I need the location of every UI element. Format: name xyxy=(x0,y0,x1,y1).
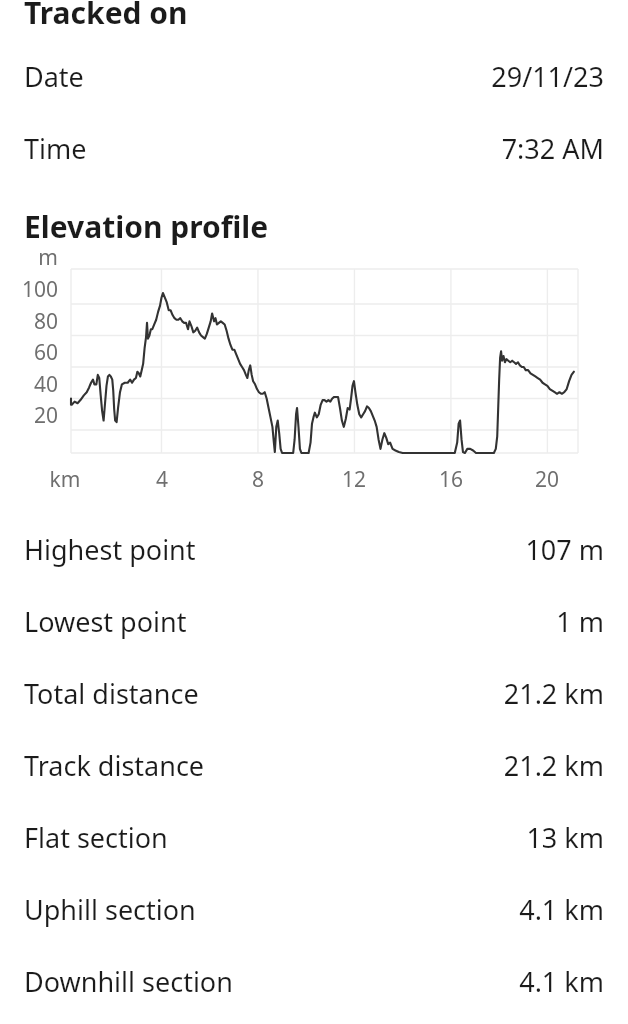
staticText: 4 xyxy=(127,465,197,494)
staticText: 16 xyxy=(416,465,486,494)
staticText: Total distance xyxy=(24,675,503,712)
staticText: 21.2 km xyxy=(503,747,604,784)
staticText: 8 xyxy=(223,465,293,494)
staticText: 4.1 km xyxy=(519,963,604,1000)
staticText: Date xyxy=(24,58,491,95)
button[interactable]: Date xyxy=(0,40,628,112)
staticText: 21.2 km xyxy=(503,675,604,712)
button[interactable]: Highest point xyxy=(0,513,628,585)
staticText: 4.1 km xyxy=(519,891,604,928)
staticText: 12 xyxy=(319,465,389,494)
staticText: 80 xyxy=(0,307,58,336)
staticText: 60 xyxy=(0,338,58,367)
staticText: Highest point xyxy=(24,531,525,568)
staticText: m xyxy=(0,243,58,272)
staticText: 1 m xyxy=(556,603,604,640)
button[interactable]: Time xyxy=(0,112,628,184)
button[interactable]: Flat section xyxy=(0,801,628,873)
staticText: Track distance xyxy=(24,747,503,784)
staticText: Flat section xyxy=(24,819,526,856)
staticText: 100 xyxy=(0,275,58,304)
staticText: Uphill section xyxy=(24,891,519,928)
staticText: Tracked on xyxy=(24,0,188,32)
button[interactable]: Downhill section xyxy=(0,945,628,1017)
staticText: km xyxy=(30,465,100,494)
button[interactable]: Uphill section xyxy=(0,873,628,945)
staticText: Time xyxy=(24,130,501,167)
button[interactable]: Track distance xyxy=(0,729,628,801)
staticText: 40 xyxy=(0,370,58,399)
staticText: 13 km xyxy=(526,819,604,856)
button[interactable]: Lowest point xyxy=(0,585,628,657)
staticText: 20 xyxy=(512,465,582,494)
staticText: Elevation profile xyxy=(24,206,269,247)
staticText: 7:32 AM xyxy=(501,130,604,167)
staticText: 107 m xyxy=(525,531,604,568)
staticText: 20 xyxy=(0,401,58,430)
button[interactable]: Total distance xyxy=(0,657,628,729)
staticText: Downhill section xyxy=(24,963,519,1000)
staticText: 29/11/23 xyxy=(491,58,604,95)
staticText: Lowest point xyxy=(24,603,556,640)
